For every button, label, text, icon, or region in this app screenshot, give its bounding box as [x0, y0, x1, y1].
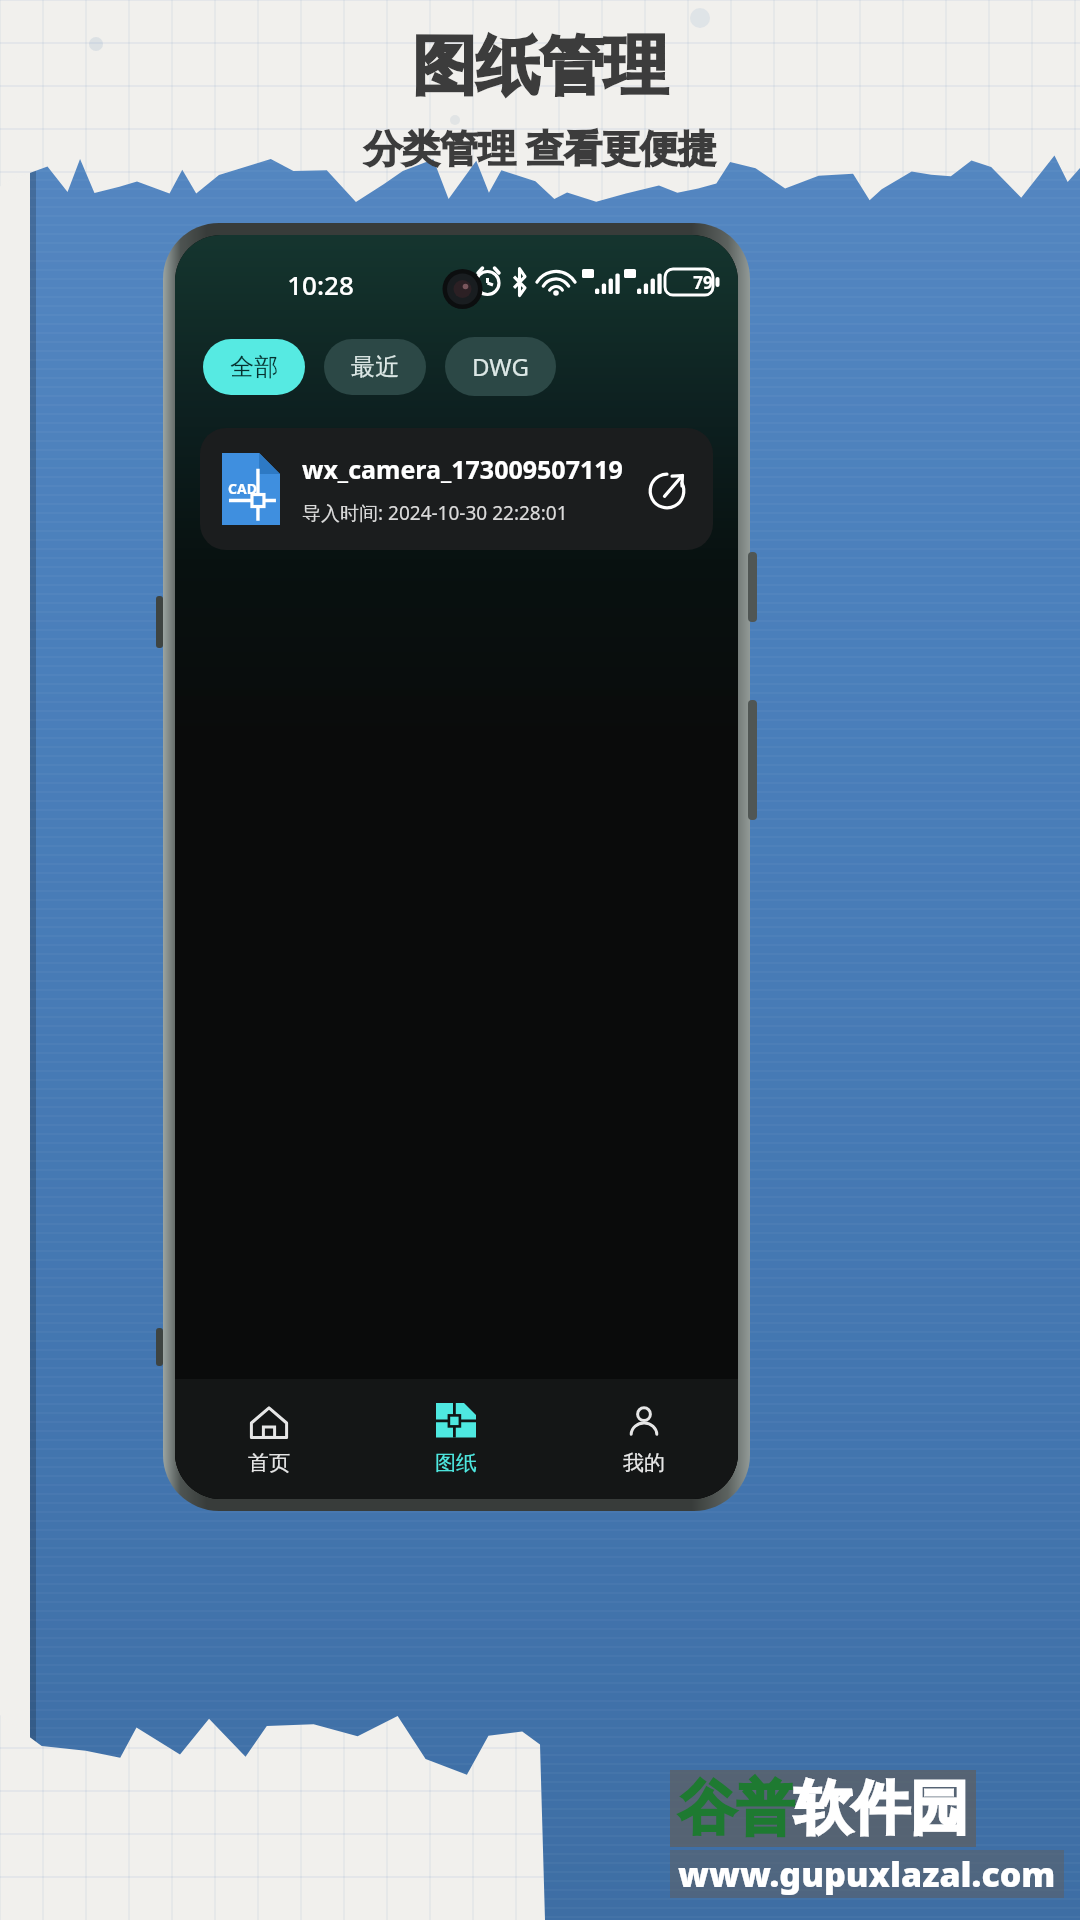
button[interactable]: CAD	[200, 428, 713, 550]
staticText: 首页	[248, 1450, 290, 1476]
button[interactable]: 图纸	[362, 1379, 550, 1499]
button[interactable]: 全部	[203, 339, 305, 395]
staticText: CAD	[228, 479, 257, 498]
staticText: 分类管理 查看更便捷	[364, 121, 716, 173]
staticText: 全部	[230, 352, 278, 382]
staticText: 79	[693, 271, 713, 294]
staticText: 图纸	[435, 1450, 477, 1476]
button[interactable]: DWG	[445, 337, 556, 396]
staticText: 导入时间: 2024-10-30 22:28:01	[302, 500, 631, 526]
staticText: www.gupuxlazal.com	[678, 1851, 1056, 1897]
staticText: wx_camera_173009507119…	[302, 452, 631, 486]
staticText: DWG	[472, 350, 529, 383]
button[interactable]: 首页	[175, 1379, 362, 1499]
staticText: 10:28	[287, 267, 354, 302]
staticText: 谷普	[678, 1772, 794, 1845]
staticText: 软件园	[794, 1772, 968, 1845]
staticText: 最近	[351, 352, 399, 382]
staticText: 图纸管理	[412, 26, 668, 107]
staticText: 我的	[623, 1450, 665, 1476]
button[interactable]: 我的	[550, 1379, 738, 1499]
button[interactable]: Share	[639, 461, 695, 517]
button[interactable]: 最近	[324, 339, 426, 395]
